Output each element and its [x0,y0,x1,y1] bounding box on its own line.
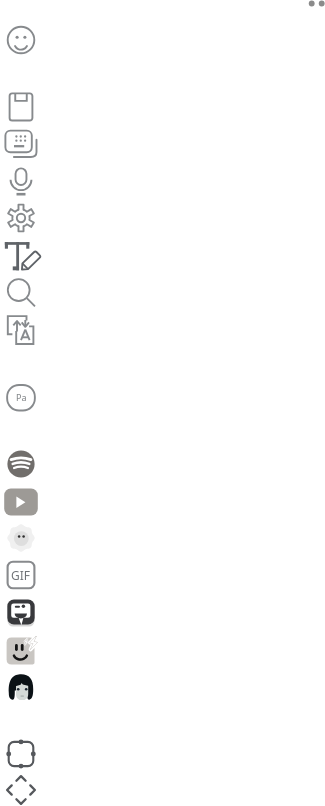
button[interactable]: Move [3,772,39,806]
button[interactable]: Translate [3,312,39,348]
button[interactable]: Spotify [3,446,39,482]
button[interactable]: GIF [3,557,39,593]
button[interactable]: YouTube [3,484,39,520]
button[interactable]: Emoji Kitchen [3,633,39,669]
button[interactable]: Text editing [3,238,39,274]
button[interactable]: Clipboard [3,89,39,125]
button[interactable]: Emoji [3,22,39,58]
button[interactable]: Paste [3,379,39,415]
button[interactable]: Keyboard [3,126,39,162]
button[interactable]: Resize [3,736,39,772]
button[interactable]: Stickers [3,595,39,631]
button[interactable]: Bitmoji [3,520,39,556]
staticText: GIF [11,567,31,583]
button[interactable]: Avatar [3,669,39,705]
staticText: Pa [16,391,27,403]
button[interactable]: Search [3,274,39,310]
button[interactable]: Settings [3,200,39,236]
button[interactable]: Voice input [3,164,39,200]
